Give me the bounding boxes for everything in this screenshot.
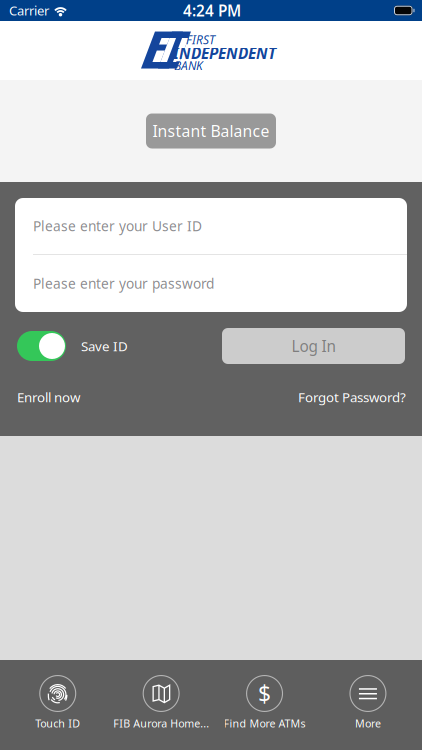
button[interactable]: Enroll now [17,388,80,406]
button[interactable]: Log In [222,328,405,364]
staticText: Log In [291,336,335,356]
staticText: Please enter your User ID [33,217,202,235]
button[interactable]: FIB Aurora Home... [109,660,213,750]
staticText: 4:24 PM [183,0,241,21]
staticText: Touch ID [35,716,80,730]
staticText: Instant Balance [152,120,269,142]
button[interactable]: Instant Balance [146,113,276,148]
staticText: $ [258,678,271,709]
staticText: Find More ATMs [224,716,306,730]
staticText: Please enter your password [33,274,214,293]
button[interactable]: More [316,660,420,750]
staticText: Carrier [9,2,49,19]
staticText: Enroll now [17,388,80,406]
button[interactable]: Save ID [17,331,128,361]
staticText: More [355,716,381,730]
staticText: BANK [174,57,203,74]
staticText: Save ID [81,337,128,355]
staticText: FIRST [186,31,215,48]
staticText: Forgot Password? [298,388,406,406]
staticText: FIB Aurora Home... [113,716,209,730]
button[interactable]: Forgot Password? [298,388,406,406]
button[interactable]: Touch ID [6,660,109,750]
staticText: INDEPENDENT [173,42,276,63]
button[interactable]: $ [213,660,316,750]
